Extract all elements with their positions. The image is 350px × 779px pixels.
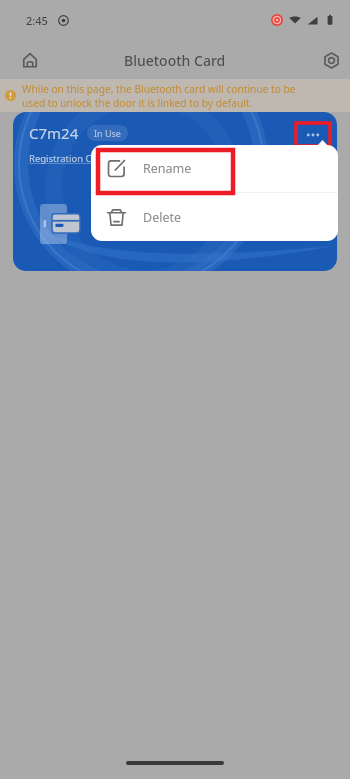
- button[interactable]: Settings: [315, 44, 347, 76]
- staticText: used to unlock the door it is linked to …: [22, 96, 253, 110]
- staticText: Delete: [143, 209, 182, 226]
- staticText: Registration Code: [29, 152, 109, 165]
- staticText: 2:45: [26, 13, 48, 28]
- button[interactable]: More options: [296, 123, 330, 146]
- staticText: In Use: [94, 127, 121, 139]
- staticText: Rename: [143, 160, 192, 177]
- button[interactable]: Delete: [91, 193, 338, 241]
- button[interactable]: C7m24: [13, 112, 337, 271]
- staticText: Bluetooth Card: [124, 51, 226, 70]
- button[interactable]: Rename: [91, 145, 338, 192]
- button[interactable]: Home: [14, 44, 46, 76]
- staticText: While on this page, the Bluetooth card w…: [22, 82, 296, 96]
- staticText: C7m24: [29, 123, 79, 143]
